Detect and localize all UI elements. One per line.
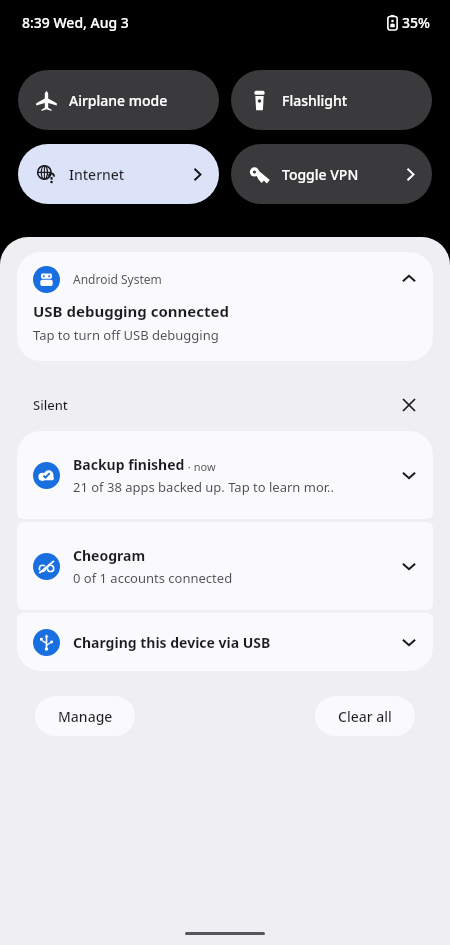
staticText: Clear all [338,707,392,726]
staticText: Silent [33,396,396,414]
staticText: 8:39 Wed, Aug 3 [22,13,129,32]
button[interactable]: Expand notification [393,550,425,582]
button[interactable]: Charging this device via USB [17,613,433,671]
staticText: 21 of 38 apps backed up. Tap to learn mo… [73,478,335,496]
button[interactable]: Toggle VPN [231,144,432,204]
staticText: Internet [69,165,190,184]
button[interactable]: Expand notification [393,626,425,658]
staticText: Cheogram [73,546,146,565]
staticText: USB debugging connected [33,301,229,321]
staticText: Charging this device via USB [73,633,271,652]
button[interactable]: Airplane mode [18,70,219,130]
button[interactable]: Manage [35,696,135,736]
button[interactable]: Android System [17,252,433,361]
staticText: 0 of 1 accounts connected [73,569,233,587]
button[interactable]: Collapse notification [393,263,425,295]
button[interactable]: Cheogram [17,522,433,610]
button[interactable]: Backup finished [17,431,433,519]
button[interactable]: Clear all [315,696,415,736]
button[interactable]: Expand notification [393,459,425,491]
staticText: Airplane mode [69,91,205,110]
staticText: Manage [58,707,113,726]
button[interactable]: Clear silent notifications [396,392,422,418]
staticText: Toggle VPN [282,165,403,184]
staticText: · now [185,459,216,474]
staticText: Backup finished [73,455,185,474]
staticText: 35% [402,13,430,32]
staticText: Android System [73,271,393,287]
staticText: Flashlight [282,91,418,110]
staticText: Tap to turn off USB debugging [33,326,219,344]
button[interactable]: Flashlight [231,70,432,130]
button[interactable]: Internet [18,144,219,204]
